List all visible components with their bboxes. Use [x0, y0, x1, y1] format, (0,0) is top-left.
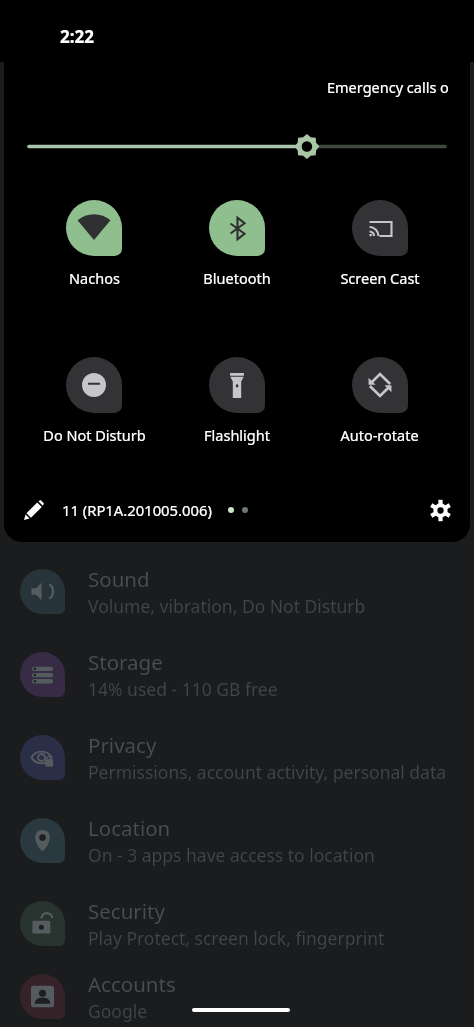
staticText: Google	[88, 999, 148, 1023]
button[interactable]: Location	[0, 799, 474, 882]
staticText: Nachos	[69, 268, 120, 288]
button[interactable]: Auto-rotate	[308, 357, 451, 445]
button[interactable]: Security	[0, 882, 474, 965]
staticText: Privacy	[88, 731, 157, 759]
staticText: Sound	[88, 565, 150, 593]
button[interactable]: Do Not Disturb	[23, 357, 165, 445]
button[interactable]: Edit	[17, 493, 51, 527]
staticText: 2:22	[60, 25, 94, 48]
button[interactable]: Bluetooth	[165, 200, 308, 288]
button[interactable]: Storage	[0, 633, 474, 716]
button[interactable]: Sound	[0, 550, 474, 633]
staticText: Security	[88, 897, 165, 925]
button[interactable]: Flashlight	[165, 357, 308, 445]
button[interactable]: Nachos	[23, 200, 165, 288]
button[interactable]: Brightness	[0, 130, 474, 163]
button[interactable]: Screen Cast	[308, 200, 451, 288]
staticText: Permissions, account activity, personal …	[88, 760, 447, 784]
staticText: Auto-rotate	[340, 425, 419, 445]
staticText: Do Not Disturb	[43, 425, 146, 445]
staticText: Screen Cast	[340, 268, 420, 288]
staticText: Volume, vibration, Do Not Disturb	[88, 594, 366, 618]
staticText: Flashlight	[204, 425, 270, 445]
staticText: Accounts	[88, 970, 176, 998]
staticText: On - 3 apps have access to location	[88, 843, 375, 867]
staticText: Emergency calls o	[327, 77, 449, 97]
staticText: Play Protect, screen lock, fingerprint	[88, 926, 385, 950]
staticText: Bluetooth	[203, 268, 271, 288]
staticText: Location	[88, 814, 171, 842]
staticText: 14% used - 110 GB free	[88, 677, 278, 701]
staticText: 11 (RP1A.201005.006)	[62, 500, 212, 520]
staticText: Storage	[88, 648, 163, 676]
button[interactable]: Settings	[423, 493, 457, 527]
button[interactable]: Privacy	[0, 716, 474, 799]
button[interactable]: Accounts	[0, 965, 474, 1027]
